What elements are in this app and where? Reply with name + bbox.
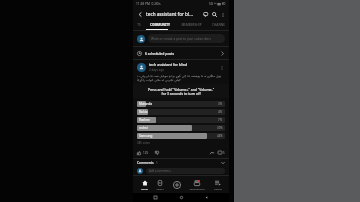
- button[interactable]: tech assistant for blind: [133, 60, 229, 74]
- staticText: 3%: [218, 102, 223, 106]
- button[interactable]: Cast: [201, 10, 210, 19]
- staticText: 125: [143, 151, 149, 155]
- button[interactable]: Create: [172, 181, 182, 189]
- button[interactable]: Library: [213, 180, 223, 190]
- staticText: 5G ⁴ᴳ ▮▮ 80: [209, 2, 226, 6]
- button[interactable]: Comments: [133, 159, 229, 167]
- staticText: Home: [141, 187, 148, 190]
- staticText: Shorts: [156, 187, 164, 190]
- button[interactable]: Dislike: [154, 150, 160, 156]
- staticText: Write or create a post to your subscribe…: [151, 37, 212, 41]
- button[interactable]: Search: [210, 10, 219, 19]
- staticText: Press and hold "Volume+" and "Volume-" f…: [138, 87, 224, 96]
- button[interactable]: More options: [219, 11, 226, 18]
- staticText: 4%: [218, 110, 223, 114]
- button[interactable]: MEMBERSHIP: [175, 21, 208, 29]
- button[interactable]: Press and hold "Volume+" and "Volume-" f…: [133, 84, 229, 98]
- button[interactable]: CHANNE: [208, 21, 229, 29]
- staticText: 30%: [217, 126, 223, 130]
- button[interactable]: COMMUNITY: [144, 21, 175, 29]
- staticText: TS: [137, 23, 141, 27]
- staticText: Realme: [139, 118, 218, 122]
- staticText: Add a comment…: [149, 169, 173, 173]
- button[interactable]: Post options: [218, 64, 225, 71]
- staticText: 2 days ago: [149, 68, 165, 72]
- button[interactable]: Back: [203, 194, 210, 201]
- staticText: Comments: [137, 161, 154, 165]
- button[interactable]: Subscriptions: [188, 180, 206, 190]
- staticText: 5: [156, 161, 221, 165]
- button[interactable]: tech assistant for bl…: [146, 11, 201, 17]
- button[interactable]: Share: [209, 150, 215, 156]
- button[interactable]: Back: [136, 10, 145, 19]
- button[interactable]: Samsung: [137, 133, 225, 139]
- staticText: 485 votes: [137, 141, 150, 145]
- staticText: 11:28 PM 0.2K/s: [136, 2, 161, 6]
- button[interactable]: Write or create a post to your subscribe…: [133, 31, 229, 46]
- staticText: tech assistant for blind: [149, 62, 188, 67]
- button[interactable]: Motorola: [137, 101, 225, 107]
- staticText: 5: [223, 151, 225, 155]
- staticText: Subscriptions: [189, 187, 205, 190]
- button[interactable]: Home: [140, 180, 149, 190]
- staticText: Nokia: [139, 110, 218, 114]
- staticText: 7%: [218, 118, 223, 122]
- button[interactable]: Nokia: [137, 109, 225, 115]
- staticText: 6 scheduled posts: [145, 51, 220, 56]
- button[interactable]: Shorts: [155, 180, 165, 190]
- staticText: ټول ملګرو ته دا پوښتنه ده چې کوم برانډ م…: [137, 74, 225, 82]
- button[interactable]: Realme: [137, 117, 225, 123]
- button[interactable]: TS: [133, 21, 144, 29]
- staticText: Samsung: [139, 134, 217, 138]
- button[interactable]: 125: [137, 151, 151, 155]
- staticText: Library: [214, 187, 222, 190]
- staticText: COMMUNITY: [150, 23, 170, 27]
- button[interactable]: Add a comment…: [133, 167, 229, 175]
- button[interactable]: Comments: [218, 151, 225, 155]
- staticText: CHANNE: [212, 23, 225, 27]
- staticText: MEMBERSHIP: [181, 23, 202, 27]
- button[interactable]: 6 scheduled posts: [133, 47, 229, 59]
- staticText: redmi: [139, 126, 217, 130]
- staticText: 44%: [217, 134, 223, 138]
- staticText: Motorola: [139, 102, 218, 106]
- button[interactable]: Recents: [152, 194, 159, 201]
- button[interactable]: Home: [178, 194, 185, 201]
- button[interactable]: redmi: [137, 125, 225, 131]
